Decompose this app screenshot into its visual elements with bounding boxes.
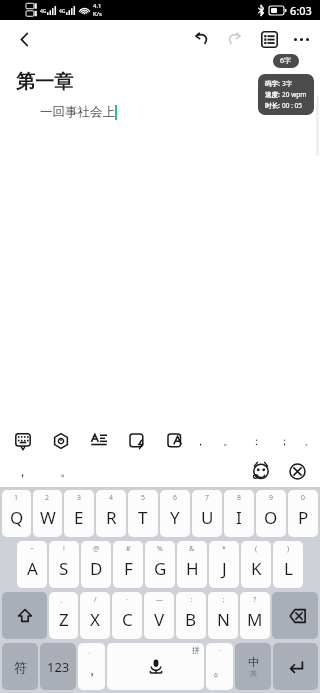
staticText: Y — [170, 506, 180, 529]
button[interactable]: 符 — [2, 643, 38, 690]
button[interactable]: Translate — [126, 430, 148, 452]
staticText: K — [251, 557, 262, 580]
button[interactable]: Enter — [273, 643, 318, 690]
button[interactable]: 5 — [128, 490, 158, 537]
button[interactable]: ) — [273, 541, 303, 588]
button[interactable]: Shift — [2, 592, 47, 639]
staticText: J — [222, 557, 227, 580]
staticText: 第一章 — [16, 70, 73, 94]
staticText: L — [284, 557, 293, 580]
button[interactable]: / — [80, 592, 110, 639]
button[interactable]: — — [144, 592, 174, 639]
staticText: O — [264, 506, 278, 529]
staticText: M — [247, 608, 263, 631]
button[interactable]: 8 — [224, 490, 254, 537]
staticText: ： — [251, 434, 262, 448]
staticText: Z — [59, 608, 69, 631]
button[interactable]: 6字 — [273, 54, 299, 68]
staticText: / — [94, 595, 97, 605]
button[interactable]: @ — [81, 541, 111, 588]
staticText: B — [185, 608, 197, 631]
button[interactable]: Backspace — [272, 592, 318, 639]
button[interactable]: · — [112, 592, 142, 639]
button[interactable]: Keyboard — [12, 430, 34, 452]
button[interactable]: ： — [242, 427, 270, 455]
staticText: 6字 — [280, 56, 292, 66]
button[interactable]: Handwriting — [164, 430, 186, 452]
button[interactable]: 3 — [64, 490, 94, 537]
button[interactable]: ? — [240, 592, 270, 639]
staticText: Q — [10, 506, 24, 529]
button[interactable]: Redo — [218, 22, 252, 56]
staticText: 0 — [301, 493, 306, 503]
staticText: ， — [85, 662, 99, 680]
button[interactable]: ~ — [17, 541, 47, 588]
button[interactable]: 1 — [2, 490, 31, 537]
button[interactable]: 、 — [49, 592, 78, 639]
staticText: V — [154, 608, 165, 631]
staticText: D — [90, 557, 103, 580]
button[interactable]: ， — [186, 427, 214, 455]
button[interactable]: # — [113, 541, 143, 588]
button[interactable]: 。 — [214, 427, 242, 455]
button[interactable]: 、 — [78, 643, 105, 690]
staticText: 00 : 05 — [282, 101, 302, 110]
staticText: 9 — [269, 493, 274, 503]
button[interactable]: 9 — [256, 490, 286, 537]
button[interactable]: ； — [270, 427, 298, 455]
button[interactable]: · — [206, 643, 233, 690]
button[interactable]: 码字: — [258, 74, 314, 115]
staticText: * — [222, 544, 226, 554]
button[interactable]: 中 — [235, 643, 271, 690]
button[interactable]: & — [177, 541, 207, 588]
button[interactable]: % — [145, 541, 175, 588]
staticText: 速度: — [265, 90, 280, 99]
button[interactable]: More — [286, 24, 316, 54]
button[interactable]: ( — [241, 541, 271, 588]
staticText: 拼 — [192, 645, 200, 655]
staticText: G — [154, 557, 167, 580]
staticText: 码字: — [265, 79, 280, 88]
staticText: 2 — [45, 493, 50, 503]
button[interactable]: 4 — [96, 490, 126, 537]
button[interactable]: * — [209, 541, 239, 588]
staticText: ! — [63, 544, 65, 554]
staticText: 8 — [237, 493, 242, 503]
staticText: 。 — [60, 463, 73, 479]
staticText: 一回事社会上 — [40, 104, 115, 120]
staticText: 、 — [88, 646, 95, 655]
staticText: ) — [287, 544, 290, 554]
button[interactable]: 6 — [160, 490, 190, 537]
staticText: 4 — [109, 493, 114, 503]
button[interactable]: Emoji — [246, 456, 276, 486]
button[interactable]: 0 — [288, 490, 318, 537]
button[interactable]: ； — [208, 592, 238, 639]
button[interactable]: Voice — [50, 430, 72, 452]
button[interactable]: Undo — [184, 22, 218, 56]
button[interactable]: Outline — [252, 22, 286, 56]
staticText: 4G — [59, 8, 66, 15]
button[interactable]: ， — [0, 455, 44, 487]
button[interactable]: 7 — [192, 490, 222, 537]
button[interactable]: 2 — [33, 490, 62, 537]
staticText: 123 — [47, 658, 70, 676]
staticText: I — [236, 506, 242, 529]
staticText: 1 — [14, 493, 19, 503]
staticText: — — [156, 595, 163, 605]
button[interactable]: Back — [6, 21, 42, 57]
button[interactable]: Close keyboard — [282, 456, 312, 486]
staticText: 5 — [141, 493, 146, 503]
button[interactable]: 、 — [298, 427, 320, 455]
button[interactable]: Edit text — [88, 430, 110, 452]
staticText: ； — [220, 595, 227, 604]
button[interactable]: ! — [49, 541, 79, 588]
staticText: W — [40, 506, 56, 529]
button[interactable]: Voice input space — [107, 643, 204, 690]
staticText: A — [27, 557, 38, 580]
staticText: R — [106, 506, 117, 529]
button[interactable]: 123 — [40, 643, 76, 690]
staticText: ( — [255, 544, 258, 554]
button[interactable]: 。 — [44, 455, 88, 487]
button[interactable]: ： — [176, 592, 206, 639]
staticText: & — [189, 544, 195, 554]
